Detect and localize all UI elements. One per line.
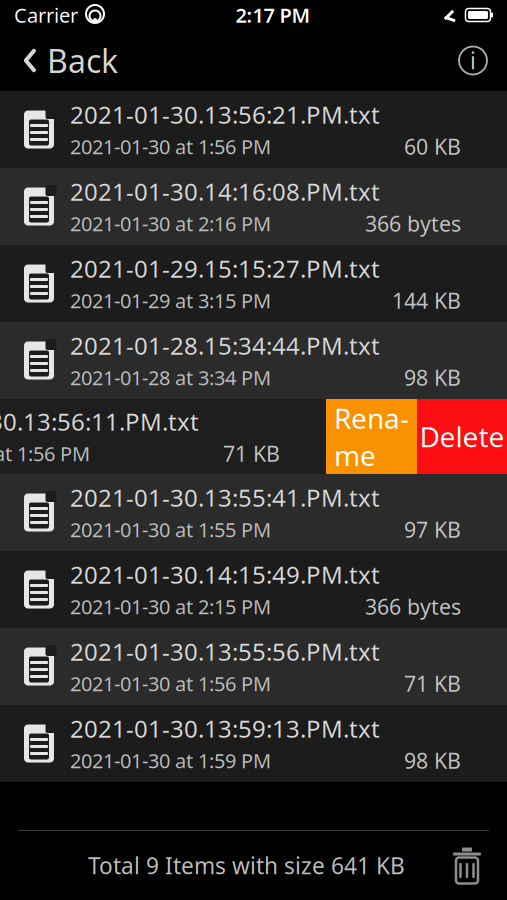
staticText: 2021-01-29 at 3:15 PM	[70, 287, 271, 314]
staticText: Total 9 Items with size 641 KB	[88, 850, 405, 880]
staticText: Back	[47, 39, 118, 82]
staticText: 2021-01-30.14:16:08.PM.txt	[70, 175, 380, 207]
staticText: 2021-01-28.15:34:44.PM.txt	[70, 329, 380, 361]
button[interactable]: Delete	[417, 399, 507, 474]
staticText: Carrier	[14, 2, 78, 28]
button[interactable]: 2021-01-30.13:59:13.PM.txt	[0, 705, 507, 782]
staticText: 97 KB	[404, 515, 461, 544]
staticText: i	[470, 45, 476, 75]
staticText: 2021-01-28 at 3:34 PM	[70, 364, 271, 391]
staticText: 144 KB	[392, 286, 461, 315]
staticText: 2021-01-30 at 2:15 PM	[70, 593, 271, 620]
button[interactable]: 2021-01-30.14:15:49.PM.txt	[0, 551, 507, 628]
staticText: Delete	[419, 418, 504, 455]
staticText: 2021-01-30 at 2:16 PM	[70, 210, 271, 237]
staticText: 2021-01-30.13:55:41.PM.txt	[70, 481, 380, 513]
staticText: 2021-01-30 at 1:56 PM	[0, 440, 90, 467]
staticText: 2021-01-30 at 1:55 PM	[70, 516, 271, 543]
staticText: 71 KB	[223, 439, 280, 468]
staticText: 2021-01-30.14:15:49.PM.txt	[70, 558, 380, 590]
button[interactable]: Rename	[326, 399, 417, 474]
staticText: 2021-01-30 at 1:56 PM	[70, 133, 271, 160]
staticText: 366 bytes	[365, 592, 461, 621]
button[interactable]: 2021-01-29.15:15:27.PM.txt	[0, 245, 507, 322]
button[interactable]: 2021-01-30.13:55:56.PM.txt	[0, 628, 507, 705]
button[interactable]: 2021-01-30.13:56:21.PM.txt	[0, 91, 507, 168]
button[interactable]: 2021-01-28.15:34:44.PM.txt	[0, 322, 507, 399]
staticText: 2021-01-29.15:15:27.PM.txt	[70, 252, 380, 284]
staticText: 366 bytes	[365, 209, 461, 238]
button[interactable]: 2021-01-30.13:55:41.PM.txt	[0, 474, 507, 551]
staticText: 2021-01-30.13:59:13.PM.txt	[70, 712, 380, 744]
button[interactable]: Delete All	[441, 839, 493, 891]
staticText: 2021-01-30.13:55:56.PM.txt	[70, 635, 380, 667]
staticText: 2:17 PM	[235, 2, 310, 28]
button[interactable]: Info	[451, 38, 495, 82]
button[interactable]: 2021-01-30.14:16:08.PM.txt	[0, 168, 507, 245]
staticText: 98 KB	[404, 363, 461, 392]
button[interactable]: Back	[12, 33, 128, 88]
staticText: 2021-01-30 at 1:59 PM	[70, 747, 271, 774]
staticText: 60 KB	[404, 132, 461, 161]
staticText: Rename	[334, 399, 409, 474]
staticText: 2021-01-30.13:56:11.PM.txt	[0, 405, 199, 437]
staticText: 2021-01-30.13:56:21.PM.txt	[70, 98, 380, 130]
staticText: 2021-01-30 at 1:56 PM	[70, 670, 271, 697]
staticText: 98 KB	[404, 746, 461, 775]
staticText: 71 KB	[404, 669, 461, 698]
